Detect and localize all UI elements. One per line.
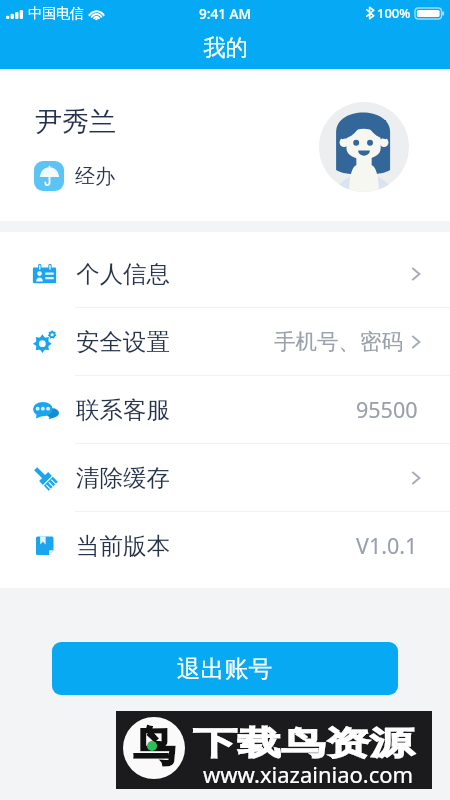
staticText: 尹秀兰 — [35, 105, 116, 139]
staticText: 经办 — [75, 164, 115, 189]
staticText: 清除缓存 — [76, 463, 170, 493]
staticText: 当前版本 — [76, 531, 170, 561]
staticText: 联系客服 — [76, 395, 170, 425]
button[interactable]: 清除缓存 — [0, 444, 450, 511]
staticText: 我的 — [203, 34, 248, 62]
button[interactable]: 联系客服 — [0, 376, 450, 443]
staticText: 鸟 — [133, 721, 175, 774]
button[interactable]: 退出账号 — [52, 642, 398, 695]
staticText: 100% — [377, 4, 411, 22]
staticText: 退出账号 — [177, 654, 273, 684]
staticText: 个人信息 — [76, 259, 170, 289]
staticText: 手机号、密码 — [274, 328, 403, 355]
button[interactable]: 个人信息 — [0, 240, 450, 307]
staticText: 中国电信 — [28, 5, 84, 23]
staticText: www.xiazainiao.com — [203, 759, 414, 789]
staticText: 9:41 AM — [199, 4, 251, 23]
button[interactable]: 安全设置 — [0, 308, 450, 375]
button[interactable]: 当前版本 — [0, 512, 450, 579]
staticText: 下载鸟资源 — [193, 723, 414, 763]
staticText: 安全设置 — [76, 327, 170, 357]
staticText: V1.0.1 — [356, 531, 418, 560]
staticText: 95500 — [356, 395, 418, 424]
